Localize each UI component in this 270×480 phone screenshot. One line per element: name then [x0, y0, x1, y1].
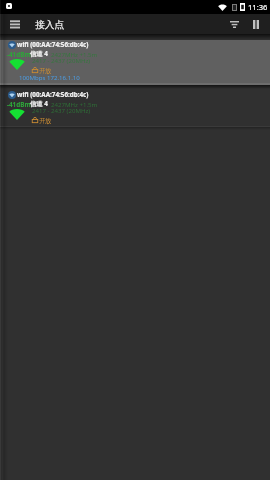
button[interactable]: wifi (00:AA:74:56:db:4c)	[0, 40, 270, 83]
staticText: -41dBm	[7, 100, 31, 109]
staticText: 开放	[39, 67, 52, 75]
button[interactable]: Filter	[223, 14, 245, 34]
staticText: -41dBm	[7, 50, 31, 59]
staticText: 2417 - 2437 (20MHz)	[32, 56, 91, 64]
staticText: 2417 - 2437 (20MHz)	[32, 106, 91, 114]
staticText: 信道 4	[30, 49, 48, 58]
staticText: 接入点	[35, 19, 65, 31]
staticText: 开放	[39, 117, 52, 125]
staticText: wifi (00:AA:74:56:db:4c)	[17, 40, 89, 49]
staticText: 100Mbps 172.16.1.10	[19, 73, 80, 81]
staticText: 11:36	[248, 2, 268, 12]
button[interactable]: Pause scanning	[245, 14, 267, 34]
staticText: 信道 4	[30, 99, 48, 108]
staticText: wifi (00:AA:74:56:db:4c)	[17, 90, 89, 99]
staticText: 2427MHz +1.5m	[51, 100, 98, 108]
button[interactable]: wifi (00:AA:74:56:db:4c)	[0, 90, 270, 126]
button[interactable]: Open navigation drawer	[4, 14, 26, 34]
staticText: 2427MHz +1.5m	[51, 50, 98, 58]
